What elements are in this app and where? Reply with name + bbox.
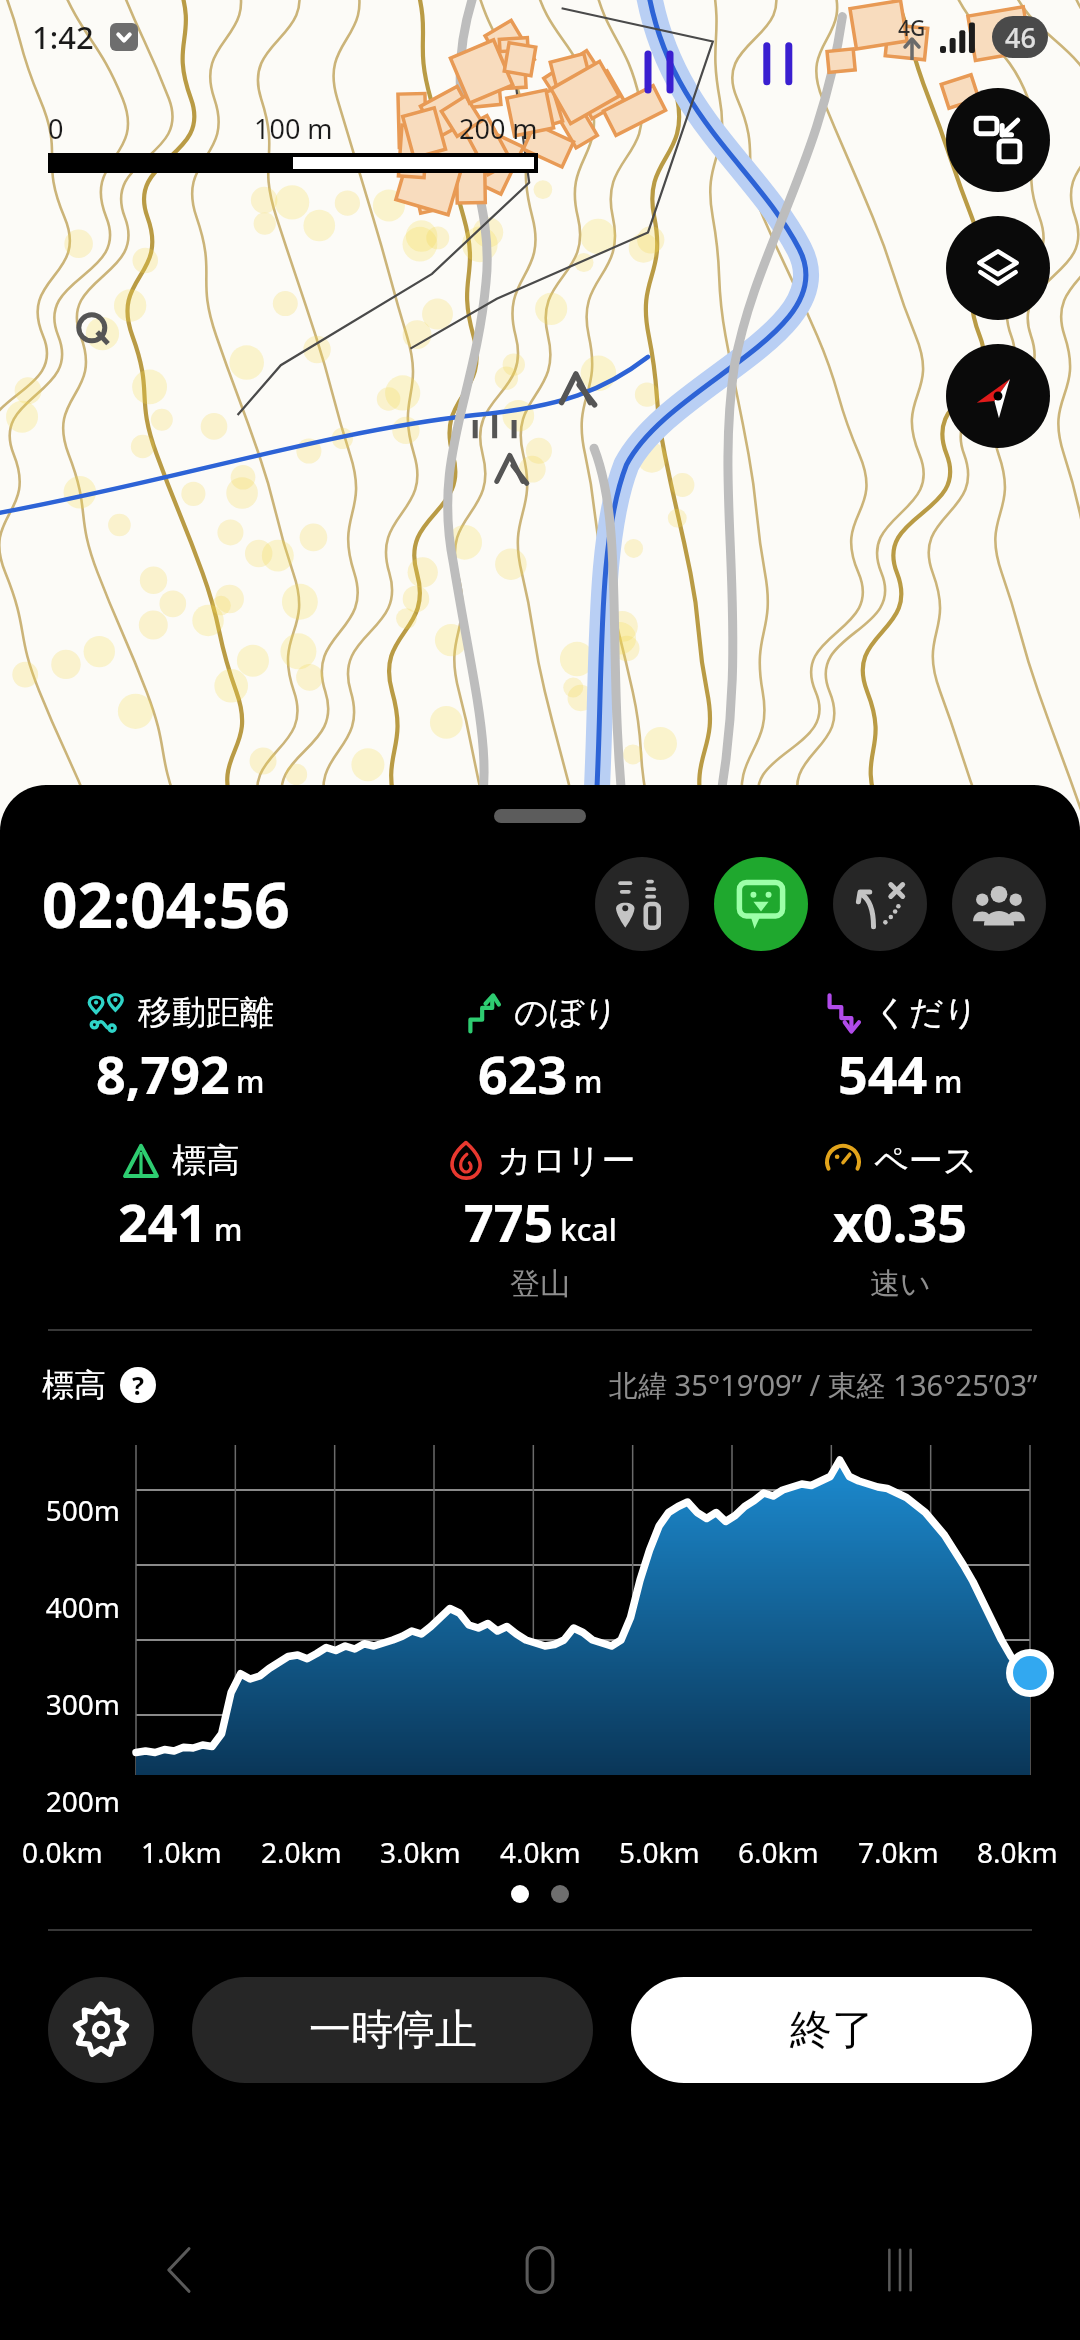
button[interactable]: Settings (48, 1977, 154, 2083)
staticText: 100 m (254, 110, 333, 147)
button[interactable]: 移動距離 (0, 991, 360, 1109)
button[interactable]: Home (360, 2200, 720, 2340)
staticText: ペース (874, 1139, 978, 1182)
staticText: 0.0km (22, 1833, 103, 1871)
staticText: 北緯 35°19’09” / 東経 136°25’03” (609, 1365, 1038, 1405)
button[interactable]: Waypoints (595, 857, 689, 951)
staticText: カロリー (497, 1139, 636, 1182)
button[interactable]: Help (120, 1367, 156, 1403)
button[interactable]: カロリー (360, 1139, 720, 1303)
button[interactable]: 終了 (631, 1977, 1032, 2083)
button[interactable]: くだり (720, 991, 1080, 1109)
staticText: 200 m (459, 110, 538, 147)
staticText: 標高 (42, 1365, 106, 1405)
staticText: 775 (464, 1186, 554, 1257)
staticText: 終了 (790, 2004, 874, 2057)
button[interactable]: Messages (714, 857, 808, 951)
staticText: 0 (48, 110, 64, 147)
staticText: 5.0km (619, 1833, 700, 1871)
staticText: 623 (478, 1038, 568, 1109)
staticText: 登山 (510, 1265, 570, 1303)
button[interactable]: Recent apps (720, 2200, 1080, 2340)
staticText: くだり (874, 991, 979, 1034)
staticText: 3.0km (380, 1833, 461, 1871)
button[interactable]: Fit to screen (946, 88, 1050, 192)
button[interactable]: 標高 (0, 1139, 360, 1257)
staticText: 46 (1005, 19, 1036, 56)
button[interactable]: のぼり (360, 991, 720, 1109)
staticText: 4G (898, 14, 926, 43)
staticText: 500m (30, 1491, 120, 1529)
staticText: 速い (870, 1265, 931, 1303)
staticText: 4.0km (500, 1833, 581, 1871)
staticText: m (214, 1209, 243, 1250)
staticText: 8,792 (96, 1038, 230, 1109)
staticText: 400m (30, 1588, 120, 1626)
staticText: 200m (30, 1782, 120, 1820)
staticText: のぼり (514, 991, 619, 1034)
staticText: 7.0km (858, 1833, 939, 1871)
button[interactable]: Route (833, 857, 927, 951)
staticText: 1.0km (141, 1833, 222, 1871)
staticText: m (236, 1061, 265, 1102)
staticText: 1:42 (32, 16, 94, 58)
staticText: 標高 (172, 1139, 240, 1182)
staticText: 02:04:56 (42, 862, 290, 946)
button[interactable]: 一時停止 (192, 1977, 593, 2083)
staticText: 6.0km (738, 1833, 819, 1871)
staticText: 241 (118, 1186, 208, 1257)
button[interactable]: Back (0, 2200, 360, 2340)
staticText: m (934, 1061, 963, 1102)
staticText: 8.0km (977, 1833, 1058, 1871)
staticText: 一時停止 (309, 2004, 477, 2057)
staticText: m (574, 1061, 603, 1102)
staticText: kcal (560, 1209, 617, 1250)
button[interactable]: ペース (720, 1139, 1080, 1303)
staticText: 300m (30, 1685, 120, 1723)
staticText: 移動距離 (138, 991, 274, 1034)
staticText: ? (132, 1368, 144, 1402)
staticText: 544 (838, 1038, 928, 1109)
button[interactable]: Map layers (946, 216, 1050, 320)
staticText: 2.0km (261, 1833, 342, 1871)
staticText: x0.35 (833, 1186, 967, 1257)
button[interactable]: Members (952, 857, 1046, 951)
button[interactable]: Compass (946, 344, 1050, 448)
